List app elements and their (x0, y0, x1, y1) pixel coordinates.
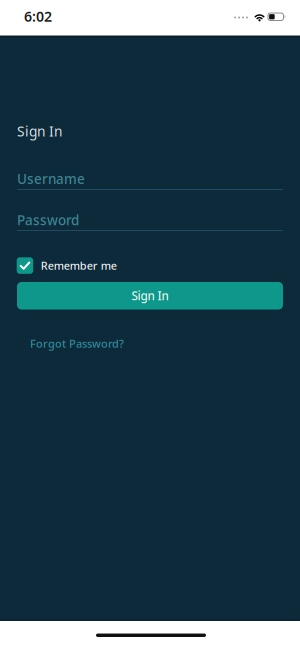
staticText: Username (17, 170, 85, 188)
button[interactable]: Remember me (17, 257, 117, 274)
staticText: Forgot Password? (30, 336, 124, 351)
button[interactable]: Forgot Password? (30, 336, 124, 351)
staticText: Sign In (17, 122, 62, 140)
button[interactable]: Password (17, 211, 283, 231)
staticText: Password (17, 211, 79, 229)
button[interactable]: Sign In (17, 282, 283, 309)
staticText: Sign In (131, 288, 168, 304)
staticText: 6:02 (24, 7, 52, 26)
staticText: Remember me (41, 258, 117, 273)
button[interactable]: Username (17, 170, 283, 190)
